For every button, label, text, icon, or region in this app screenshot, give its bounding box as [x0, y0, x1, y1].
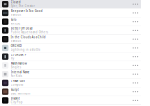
button[interactable]: I Have Got	[0, 79, 141, 88]
staticText: ORCHID	[11, 44, 22, 48]
button[interactable]: Marshmallow	[0, 61, 141, 70]
staticText: Tyler, The Creator	[11, 4, 35, 8]
staticText: Sleepover Is Too Good	[11, 9, 43, 13]
staticText: Marshmallow	[11, 62, 27, 65]
staticText: CI ORDER P	[11, 53, 27, 56]
staticText: For Kids	[11, 74, 22, 78]
button[interactable]: Solo	[0, 17, 141, 26]
staticText: In the Clouds As a Child	[11, 35, 46, 39]
staticText: Various	[11, 39, 21, 43]
staticText: Sculpt	[11, 88, 19, 91]
staticText: Better Off Dead	[11, 27, 33, 30]
staticText: Public Taqueria and Others	[11, 31, 48, 34]
button[interactable]: Sculpt	[0, 87, 141, 96]
staticText: Internal Name	[11, 70, 30, 74]
staticText: Closed	[11, 0, 21, 4]
staticText: City Pop	[11, 100, 23, 104]
staticText: Blacklit	[11, 97, 20, 100]
button[interactable]: Internal Name	[0, 70, 141, 79]
button[interactable]: Closed	[0, 0, 141, 9]
button[interactable]: ORCHID	[0, 44, 141, 53]
staticText: Lightning in a Bottle	[11, 48, 41, 51]
button[interactable]: Blacklit	[0, 96, 141, 105]
staticText: Various	[11, 13, 21, 17]
staticText: Solo	[11, 18, 17, 21]
staticText: Compose	[11, 83, 24, 86]
button[interactable]: Sleepover Is Too Good	[0, 9, 141, 18]
button[interactable]: Better Off Dead	[0, 26, 141, 35]
staticText: Fly	[11, 57, 14, 60]
staticText: ARTISTE	[11, 22, 20, 25]
button[interactable]: In the Clouds As a Child	[0, 35, 141, 44]
button[interactable]: CI ORDER P	[0, 52, 141, 61]
staticText: I Have Got	[11, 79, 25, 83]
staticText: Singles	[11, 65, 21, 69]
staticText: Bare Minimum	[11, 92, 30, 95]
